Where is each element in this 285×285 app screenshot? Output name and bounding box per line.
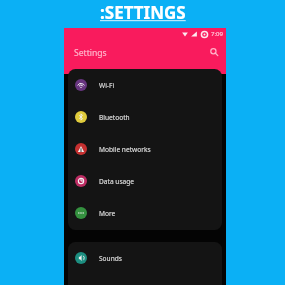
button[interactable]: More <box>68 197 222 229</box>
button[interactable]: Wi-Fi <box>68 69 222 101</box>
staticText: Sounds <box>99 254 122 263</box>
staticText: 7:09 <box>211 30 223 38</box>
button[interactable]: Mobile networks <box>68 133 222 165</box>
staticText: Wi-Fi <box>99 81 115 90</box>
button[interactable]: Sounds <box>68 242 222 274</box>
staticText: More <box>99 209 116 218</box>
staticText: Mobile networks <box>99 145 151 154</box>
staticText: Data usage <box>99 177 135 186</box>
staticText: Bluetooth <box>99 113 130 122</box>
button[interactable]: Search <box>205 44 223 62</box>
button[interactable]: Data usage <box>68 165 222 197</box>
staticText: :SETTINGS <box>100 1 186 24</box>
button[interactable]: Bluetooth <box>68 101 222 133</box>
staticText: Settings <box>74 47 107 59</box>
